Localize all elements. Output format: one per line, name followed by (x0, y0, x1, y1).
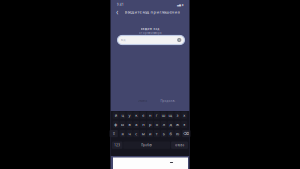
staticText: ✕ (178, 38, 180, 41)
staticText: с (135, 131, 137, 136)
button[interactable]: м (140, 130, 146, 137)
staticText: х (183, 112, 185, 118)
button[interactable]: Продолж. (155, 97, 181, 104)
staticText: э (183, 122, 185, 127)
staticText: и (149, 131, 151, 136)
button[interactable]: г (154, 112, 160, 119)
button[interactable]: ц (120, 112, 126, 119)
staticText: ч (128, 131, 130, 136)
button[interactable]: ч (126, 130, 132, 137)
button[interactable]: 123 (112, 142, 122, 149)
staticText: ц (122, 112, 124, 118)
staticText: р (149, 122, 151, 127)
button[interactable]: с (133, 130, 139, 137)
staticText: й (115, 112, 117, 118)
staticText: ▃▅ ▮ (177, 3, 183, 6)
button[interactable]: е (140, 112, 146, 119)
staticText: ⇧ (112, 131, 115, 136)
staticText: т (156, 131, 158, 136)
staticText: ы (121, 122, 124, 127)
staticText: ф (114, 122, 117, 127)
button[interactable]: Готово (171, 142, 188, 149)
button[interactable]: я (120, 130, 126, 137)
button[interactable]: х (181, 112, 187, 119)
staticText: л (163, 122, 165, 127)
staticText: б (170, 131, 172, 136)
staticText: м (142, 131, 145, 136)
button[interactable]: ⌫ (182, 130, 190, 137)
staticText: ⌫ (183, 131, 189, 136)
staticText: Готово (175, 143, 185, 147)
staticText: д (170, 122, 172, 127)
button[interactable]: ⇧ (110, 130, 118, 137)
button[interactable]: б (168, 130, 174, 137)
staticText: ш (162, 112, 166, 118)
button[interactable]: д (168, 121, 174, 128)
button[interactable]: Back (114, 7, 120, 16)
staticText: ю (176, 131, 179, 136)
staticText: п (142, 122, 144, 127)
staticText: Продолж. (160, 99, 175, 103)
staticText: Введите код (140, 27, 159, 31)
staticText: Пробел (141, 143, 152, 147)
staticText: ь (163, 131, 165, 136)
button[interactable]: й (113, 112, 119, 119)
staticText: Введите код приглашения (124, 9, 179, 15)
button[interactable]: ж (174, 121, 180, 128)
staticText: Отмена (137, 99, 146, 103)
button[interactable]: ф (113, 121, 119, 128)
staticText: е (142, 112, 144, 118)
button[interactable]: л (161, 121, 167, 128)
button[interactable]: о (154, 121, 160, 128)
staticText: о (156, 122, 158, 127)
staticText: н (149, 112, 151, 118)
staticText: з (176, 112, 178, 118)
button[interactable]: к (133, 112, 139, 119)
button[interactable]: н (147, 112, 153, 119)
button[interactable]: Отмена (129, 97, 155, 104)
button[interactable]: и (147, 130, 153, 137)
staticText: 9:41 (117, 3, 124, 6)
staticText: я (122, 131, 124, 136)
staticText: 123 (114, 143, 120, 147)
button[interactable]: т (154, 130, 160, 137)
button[interactable]: ы (120, 121, 126, 128)
staticText: к (135, 112, 137, 118)
staticText: г (156, 112, 158, 118)
button[interactable]: щ (168, 112, 174, 119)
button[interactable]: Пробел (123, 142, 170, 149)
staticText: от организатора (139, 31, 161, 35)
button[interactable]: э (181, 121, 187, 128)
staticText: ‹ (116, 7, 118, 17)
button[interactable]: ь (161, 130, 167, 137)
staticText: у (128, 112, 130, 118)
button[interactable]: р (147, 121, 153, 128)
button[interactable]: ю (174, 130, 180, 137)
staticText: а (135, 122, 137, 127)
staticText: код (121, 38, 126, 42)
button[interactable]: в (126, 121, 132, 128)
staticText: ж (176, 122, 179, 127)
staticText: щ (169, 112, 173, 118)
staticText: в (128, 122, 130, 127)
button[interactable]: ш (161, 112, 167, 119)
button[interactable]: у (126, 112, 132, 119)
button[interactable]: п (140, 121, 146, 128)
button[interactable]: а (133, 121, 139, 128)
button[interactable]: з (174, 112, 180, 119)
